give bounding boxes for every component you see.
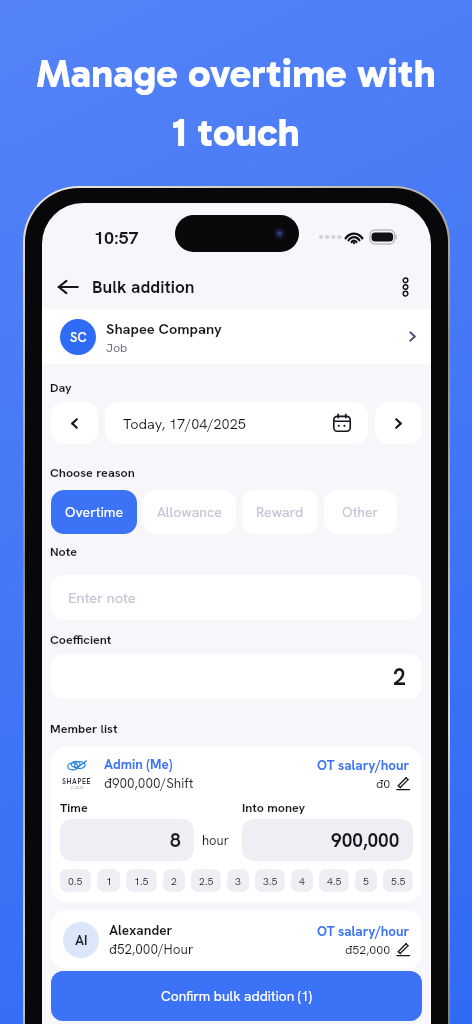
button[interactable]: 900,000 <box>242 819 413 861</box>
button[interactable]: AI <box>51 910 422 969</box>
staticText: 2 <box>171 874 177 888</box>
staticText: Shapee Company <box>106 319 222 338</box>
staticText: đ0 <box>376 775 391 791</box>
staticText: Coefficient <box>50 631 112 647</box>
button[interactable]: Allowance <box>143 490 236 534</box>
other: Edit <box>396 942 410 956</box>
button[interactable]: 5.5 <box>383 869 413 892</box>
button[interactable]: 1 <box>97 869 120 892</box>
button[interactable]: 4.5 <box>319 869 349 892</box>
button[interactable]: 2.5 <box>191 869 221 892</box>
staticText: 1.5 <box>134 874 149 888</box>
button[interactable]: Overtime <box>51 490 137 534</box>
button[interactable]: SC <box>42 309 431 364</box>
staticText: 10:57 <box>94 226 139 249</box>
button[interactable]: 3 <box>227 869 249 892</box>
staticText: SHAPEE <box>62 777 92 786</box>
staticText: Bulk addition <box>92 276 195 298</box>
staticText: Overtime <box>65 503 123 521</box>
staticText: Confirm bulk addition (1) <box>161 987 312 1005</box>
button[interactable]: Next day <box>375 402 422 444</box>
button[interactable]: 2 <box>51 654 422 699</box>
staticText: 5.5 <box>391 874 406 888</box>
button[interactable]: Reward <box>242 490 318 534</box>
staticText: Job <box>106 339 128 355</box>
staticText: 5 <box>363 874 369 888</box>
staticText: Day <box>50 379 72 395</box>
button[interactable]: 1.5 <box>126 869 157 892</box>
staticText: đ52,000/Hour <box>109 940 194 958</box>
staticText: 1 touch <box>172 108 300 156</box>
other: Edit <box>396 776 410 790</box>
staticText: Member list <box>50 720 118 736</box>
button[interactable]: Confirm bulk addition (1) <box>51 971 422 1021</box>
staticText: Time <box>60 799 88 815</box>
staticText: 900,000 <box>331 828 400 853</box>
staticText: 2 <box>393 662 406 692</box>
staticText: Today, 17/04/2025 <box>123 414 332 433</box>
staticText: Other <box>342 503 379 521</box>
button[interactable]: 3.5 <box>255 869 285 892</box>
staticText: Into money <box>242 799 306 815</box>
staticText: Manage overtime with <box>36 49 436 97</box>
button[interactable]: Previous day <box>51 402 98 444</box>
staticText: 3 <box>235 874 241 888</box>
staticText: 3.5 <box>263 874 278 888</box>
staticText: AI <box>75 931 88 949</box>
button[interactable]: Enter note <box>51 575 422 620</box>
staticText: Allowance <box>157 503 222 521</box>
staticText: đ900,000/Shift <box>104 774 194 792</box>
staticText: Alexander <box>109 921 173 939</box>
button[interactable]: Back <box>49 268 87 306</box>
button[interactable]: Today, 17/04/2025 <box>105 402 368 444</box>
button[interactable]: 4 <box>291 869 313 892</box>
button[interactable]: Other <box>324 490 397 534</box>
staticText: OT salary/hour <box>317 757 410 774</box>
staticText: 2.5 <box>199 874 214 888</box>
button[interactable]: More options <box>389 271 421 303</box>
staticText: Enter note <box>68 588 136 607</box>
button[interactable]: 2 <box>163 869 185 892</box>
staticText: 8 <box>170 828 181 853</box>
staticText: đ52,000 <box>345 941 391 957</box>
staticText: Choose reason <box>50 464 135 480</box>
button[interactable]: 0.5 <box>60 869 91 892</box>
staticText: Reward <box>256 503 304 521</box>
staticText: 1 <box>106 874 112 888</box>
staticText: 4.5 <box>327 874 342 888</box>
staticText: Note <box>50 543 77 559</box>
staticText: SC <box>70 329 87 346</box>
staticText: hour <box>202 832 230 849</box>
staticText: 0.5 <box>68 874 83 888</box>
staticText: OT salary/hour <box>317 923 410 940</box>
staticText: 4 <box>299 874 305 888</box>
button[interactable]: 8 <box>60 819 194 861</box>
staticText: CLOUD <box>71 786 84 790</box>
staticText: Admin (Me) <box>104 756 173 773</box>
button[interactable]: 5 <box>355 869 377 892</box>
